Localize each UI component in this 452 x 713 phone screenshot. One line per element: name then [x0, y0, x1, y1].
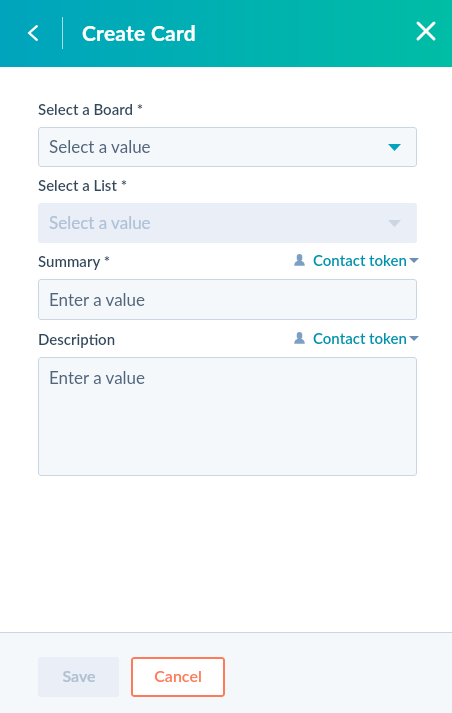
staticText: Enter a value [49, 367, 146, 387]
staticText: Select a Board * [38, 100, 144, 118]
button[interactable]: Contact token [294, 250, 419, 270]
button[interactable]: Select a value [38, 203, 417, 243]
button[interactable]: Close [403, 8, 449, 54]
staticText: Contact token [313, 251, 407, 269]
staticText: Summary * [38, 252, 111, 270]
staticText: Enter a value [49, 289, 146, 309]
staticText: Save [62, 666, 96, 685]
staticText: Create Card [82, 20, 196, 45]
button[interactable]: Save [38, 657, 119, 697]
button[interactable]: Select a value [38, 127, 417, 167]
button[interactable]: Enter a value [38, 279, 417, 320]
button[interactable]: Back [10, 10, 56, 56]
staticText: Select a List * [38, 176, 128, 194]
staticText: Cancel [154, 666, 202, 685]
staticText: Contact token [313, 329, 407, 347]
button[interactable]: Cancel [131, 657, 225, 697]
staticText: Select a value [49, 212, 151, 232]
button[interactable]: Contact token [294, 328, 419, 348]
staticText: Description [38, 330, 116, 348]
button[interactable]: Enter a value [38, 357, 417, 476]
staticText: Select a value [49, 136, 151, 156]
